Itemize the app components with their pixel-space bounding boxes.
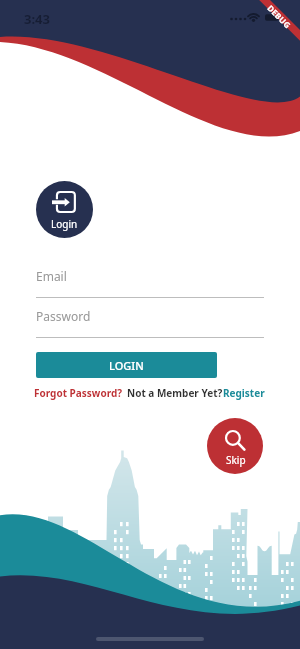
staticText: Login [51,217,78,231]
staticText: Password [36,308,91,324]
button[interactable]: Register [223,386,265,400]
staticText: DEBUG [265,2,294,31]
staticText: LOGIN [109,358,144,373]
button[interactable]: LOGIN [36,352,217,378]
staticText: Skip [226,453,246,467]
staticText: 3:43 [24,10,50,28]
button[interactable]: Login [36,181,93,238]
staticText: Not a Member Yet? [127,386,223,400]
button[interactable]: Forgot Password? [34,386,123,400]
staticText: Email [36,268,67,284]
button[interactable]: Skip [207,418,263,474]
